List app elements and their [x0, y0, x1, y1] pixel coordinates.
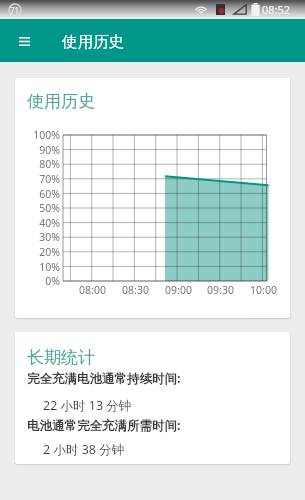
- staticText: 2 小时 38 分钟: [43, 441, 125, 458]
- staticText: 电池通常完全充满所需时间:: [27, 417, 181, 434]
- staticText: 71: [10, 5, 20, 16]
- staticText: 100%: [33, 128, 60, 142]
- staticText: 70%: [39, 172, 60, 186]
- staticText: 40%: [39, 216, 60, 230]
- staticText: 22 小时 13 分钟: [43, 397, 132, 414]
- staticText: 90%: [39, 143, 60, 157]
- staticText: 60%: [39, 187, 60, 201]
- staticText: 08:30: [122, 283, 149, 297]
- staticText: 0%: [45, 274, 60, 288]
- staticText: 20%: [39, 245, 60, 259]
- staticText: 80%: [39, 157, 60, 171]
- button[interactable]: Open navigation menu: [0, 19, 48, 62]
- staticText: 09:00: [165, 283, 192, 297]
- staticText: 50%: [39, 201, 60, 215]
- staticText: 08:00: [79, 283, 106, 297]
- staticText: 10%: [39, 260, 60, 274]
- staticText: 08:52: [262, 2, 291, 17]
- staticText: 完全充满电池通常持续时间:: [27, 370, 181, 387]
- staticText: 09:30: [207, 283, 234, 297]
- staticText: 30%: [39, 230, 60, 244]
- staticText: 使用历史: [27, 91, 95, 112]
- staticText: 使用历史: [62, 32, 124, 52]
- staticText: 10:00: [250, 283, 277, 297]
- staticText: 长期统计: [27, 347, 95, 368]
